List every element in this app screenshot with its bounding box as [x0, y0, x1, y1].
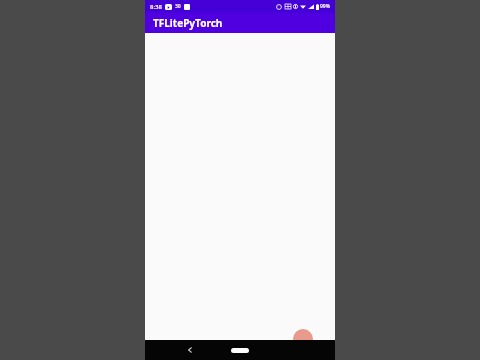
staticText: 8:38: [150, 3, 162, 11]
button[interactable]: Add: [293, 329, 313, 349]
staticText: TFLitePyTorch: [153, 16, 223, 30]
button[interactable]: Home: [225, 343, 255, 357]
staticText: 99%: [320, 3, 330, 10]
button[interactable]: Back: [183, 343, 197, 357]
staticText: 30: [175, 3, 181, 10]
